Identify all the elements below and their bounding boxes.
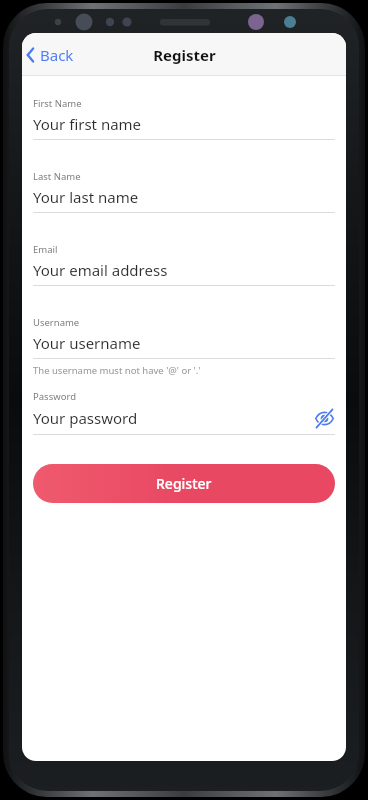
button[interactable]: Username <box>33 316 335 359</box>
button[interactable]: Register <box>33 464 335 503</box>
button[interactable]: Back <box>22 45 84 65</box>
button[interactable]: First Name <box>33 97 335 140</box>
staticText: Password <box>33 390 76 403</box>
staticText: Email <box>33 243 58 256</box>
button[interactable]: Toggle password visibility <box>313 407 335 429</box>
staticText: Your username <box>33 333 335 353</box>
button[interactable]: Last Name <box>33 170 335 213</box>
staticText: Register <box>156 474 212 493</box>
staticText: Your password <box>33 408 313 428</box>
staticText: The username must not have '@' or '.' <box>33 364 201 377</box>
staticText: Back <box>40 45 74 65</box>
staticText: First Name <box>33 97 82 110</box>
button[interactable]: Password <box>33 390 335 435</box>
staticText: Your last name <box>33 187 335 207</box>
staticText: Register <box>153 45 216 65</box>
staticText: Username <box>33 316 80 329</box>
button[interactable]: Email <box>33 243 335 286</box>
staticText: Your email address <box>33 260 335 280</box>
staticText: Your first name <box>33 114 335 134</box>
staticText: Last Name <box>33 170 81 183</box>
